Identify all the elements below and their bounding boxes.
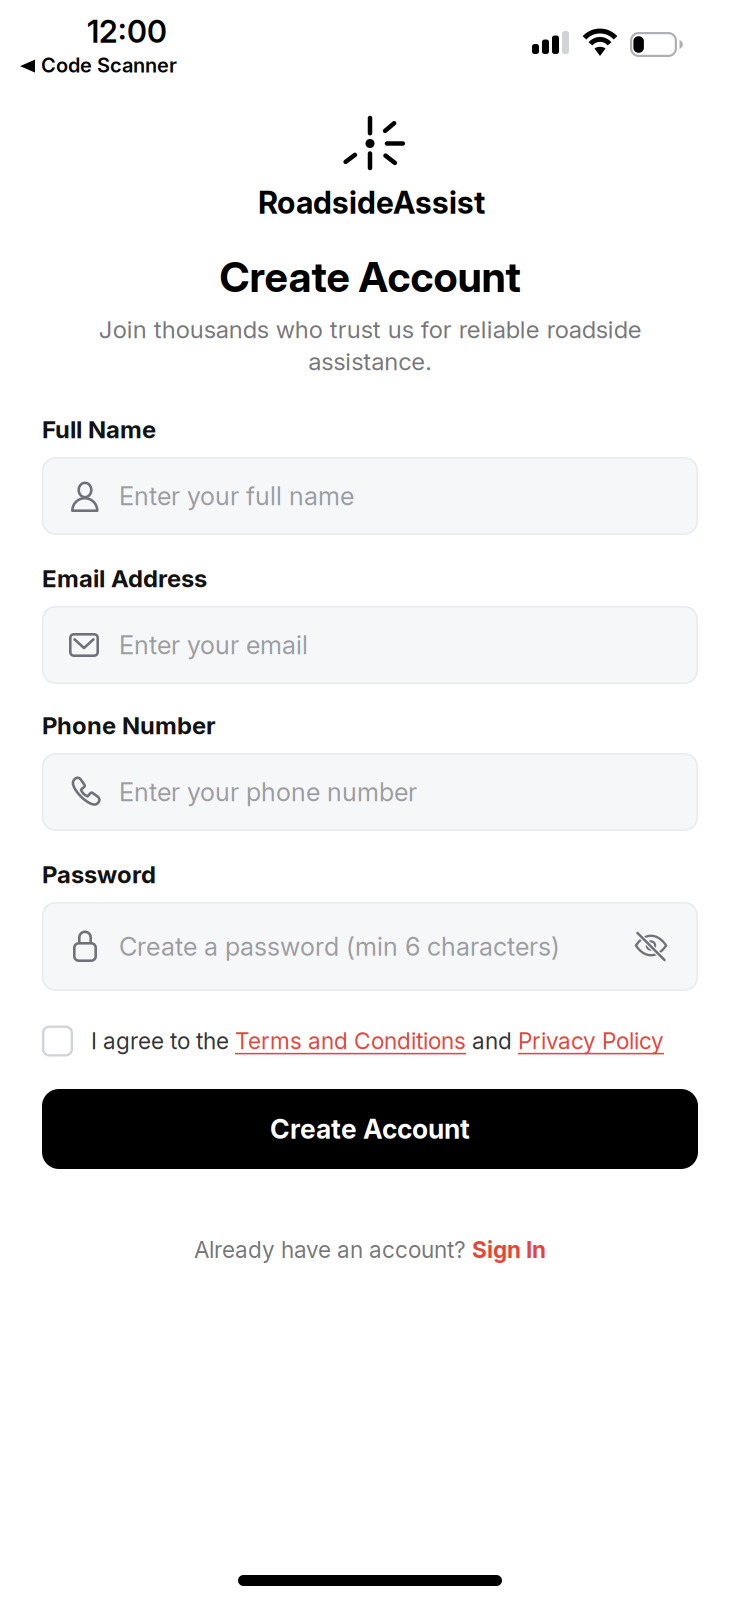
staticText: Full Name — [42, 415, 156, 444]
staticText: Password — [42, 860, 156, 889]
button[interactable]: Enter your phone number — [42, 753, 698, 831]
staticText: Enter your email — [119, 630, 308, 660]
staticText: and — [466, 1027, 518, 1055]
staticText: Privacy Policy — [518, 1027, 664, 1055]
staticText: Create a password (min 6 characters) — [119, 931, 560, 962]
staticText: Create Account — [219, 252, 520, 302]
staticText: Join thousands who trust us for reliable… — [98, 315, 641, 376]
staticText: Phone Number — [42, 711, 216, 740]
staticText: Enter your phone number — [119, 777, 417, 807]
button[interactable]: Already have an account? — [0, 1236, 740, 1263]
staticText: Already have an account? — [194, 1236, 472, 1263]
button[interactable]: I agree to the — [42, 1024, 698, 1058]
button[interactable]: Create Account — [42, 1089, 698, 1169]
button[interactable]: Create a password (min 6 characters) — [42, 902, 698, 991]
staticText: Email Address — [42, 564, 207, 593]
staticText: RoadsideAssist — [258, 184, 485, 221]
button[interactable]: Enter your email — [42, 606, 698, 684]
staticText: 12:00 — [87, 13, 167, 50]
staticText: Terms and Conditions — [235, 1027, 466, 1055]
staticText: Enter your full name — [119, 481, 354, 511]
staticText: Create Account — [270, 1113, 470, 1145]
button[interactable]: Enter your full name — [42, 457, 698, 535]
staticText: Code Scanner — [41, 53, 177, 77]
staticText: I agree to the — [91, 1027, 235, 1055]
staticText: Sign In — [472, 1236, 546, 1263]
